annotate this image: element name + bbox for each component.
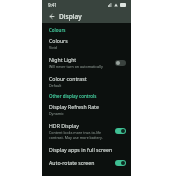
staticText: HDR Display — [49, 122, 79, 129]
button[interactable]: Back — [47, 12, 56, 21]
button[interactable]: Colours — [42, 34, 131, 53]
staticText: Will never turn on automatically — [49, 64, 103, 69]
button[interactable]: Toggle on — [115, 160, 126, 166]
staticText: Display Refresh Rate — [49, 103, 99, 110]
button[interactable]: Colour contrast — [42, 72, 131, 91]
staticText: Colours — [49, 37, 68, 44]
staticText: Auto-rotate screen — [49, 159, 95, 166]
staticText: Display apps in full screen — [49, 146, 113, 153]
button[interactable]: Display Refresh Rate — [42, 100, 131, 119]
staticText: Colour contrast — [49, 75, 87, 82]
staticText: Colours — [49, 27, 66, 33]
button[interactable]: Display apps in full screen — [42, 143, 131, 156]
button[interactable]: HDR Display — [42, 119, 131, 143]
button[interactable]: Toggle on — [115, 128, 126, 134]
button[interactable]: Night Light — [42, 53, 131, 72]
staticText: Night Light — [49, 56, 77, 63]
staticText: Other display controls — [49, 93, 97, 99]
staticText: 9:41 — [48, 2, 57, 8]
staticText: Content looks more true-to-life contrast… — [49, 130, 112, 140]
button[interactable]: Auto-rotate screen — [42, 156, 131, 169]
button[interactable]: Toggle off — [115, 60, 126, 66]
staticText: Default — [49, 83, 62, 88]
staticText: Dynamic — [49, 111, 64, 116]
staticText: Display — [59, 12, 82, 21]
staticText: Vivid — [49, 45, 58, 50]
